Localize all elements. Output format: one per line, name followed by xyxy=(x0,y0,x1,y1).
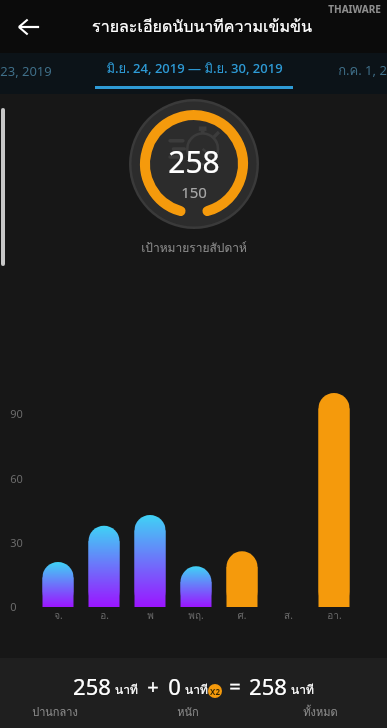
staticText: 0 xyxy=(168,671,181,701)
staticText: นาที xyxy=(291,680,314,699)
staticText: นาที xyxy=(185,680,208,699)
staticText: 258 xyxy=(168,141,220,182)
staticText: 30 xyxy=(10,535,23,550)
staticText: ศ. xyxy=(237,608,247,624)
staticText: เป้าหมายรายสัปดาห์ xyxy=(141,238,247,257)
staticText: 60 xyxy=(10,471,23,486)
staticText: มิ.ย. 24, 2019 — มิ.ย. 30, 2019 xyxy=(106,58,283,79)
staticText: ปานกลาง xyxy=(32,703,78,720)
button[interactable]: ก.ค. 1, 2 xyxy=(338,60,387,81)
staticText: หนัก xyxy=(177,703,199,720)
staticText: อา. xyxy=(327,608,342,624)
button[interactable]: 258 xyxy=(129,99,259,229)
button[interactable]: 258 xyxy=(0,658,387,728)
staticText: X2 xyxy=(210,686,220,697)
staticText: ส. xyxy=(284,608,293,624)
staticText: จ. xyxy=(54,608,63,624)
staticText: + xyxy=(147,673,159,700)
staticText: 258 xyxy=(73,671,111,701)
staticText: 150 xyxy=(181,182,207,202)
staticText: THAIWARE xyxy=(328,2,381,16)
staticText: 0 xyxy=(10,599,17,614)
staticText: อ. xyxy=(100,608,109,624)
staticText: รายละเอียดนับนาทีความเข้มข้น xyxy=(92,14,312,39)
staticText: พ xyxy=(147,608,154,624)
staticText: นาที xyxy=(115,680,138,699)
staticText: พฤ. xyxy=(188,608,204,624)
staticText: 258 xyxy=(249,671,287,701)
button[interactable]: Back xyxy=(6,4,52,50)
button[interactable]: มิ.ย. 24, 2019 — มิ.ย. 30, 2019 xyxy=(95,58,293,89)
staticText: ทั้งหมด xyxy=(303,703,338,720)
button[interactable]: 23, 2019 xyxy=(0,62,52,80)
staticText: = xyxy=(229,673,241,700)
staticText: 90 xyxy=(10,406,23,421)
